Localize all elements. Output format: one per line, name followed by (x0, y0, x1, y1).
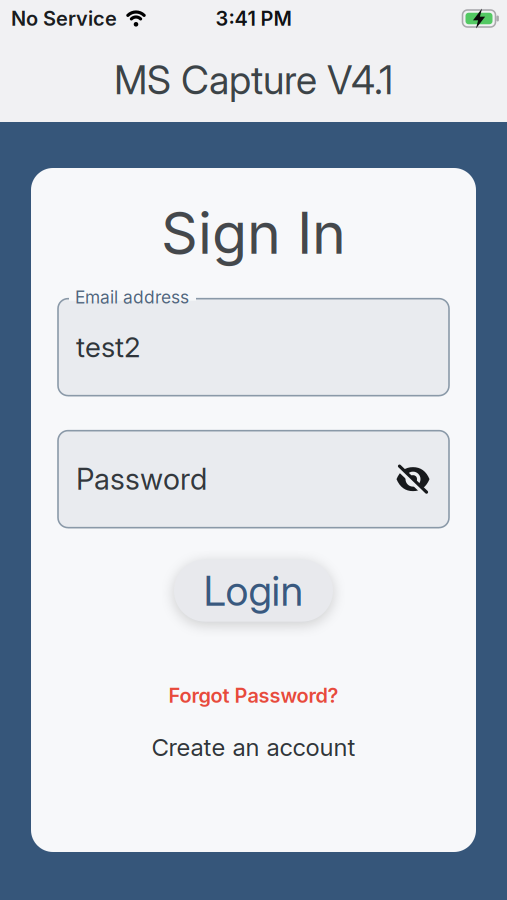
staticText: Forgot Password? (168, 684, 338, 707)
button[interactable]: Password (58, 431, 449, 528)
button[interactable]: Forgot Password? (168, 684, 338, 707)
staticText: Create an account (151, 733, 355, 761)
staticText: 3:41 PM (215, 7, 291, 30)
button[interactable]: Show password (395, 464, 431, 494)
staticText: Login (203, 566, 303, 615)
staticText: Email address (75, 287, 189, 307)
staticText: MS Capture V4.1 (114, 57, 393, 103)
button[interactable]: Login (174, 560, 333, 622)
staticText: test2 (76, 331, 141, 364)
staticText: Password (76, 462, 207, 496)
button[interactable]: Create an account (151, 733, 355, 761)
staticText: Sign In (161, 199, 346, 267)
button[interactable]: test2 (58, 299, 449, 396)
staticText: No Service (11, 7, 117, 30)
